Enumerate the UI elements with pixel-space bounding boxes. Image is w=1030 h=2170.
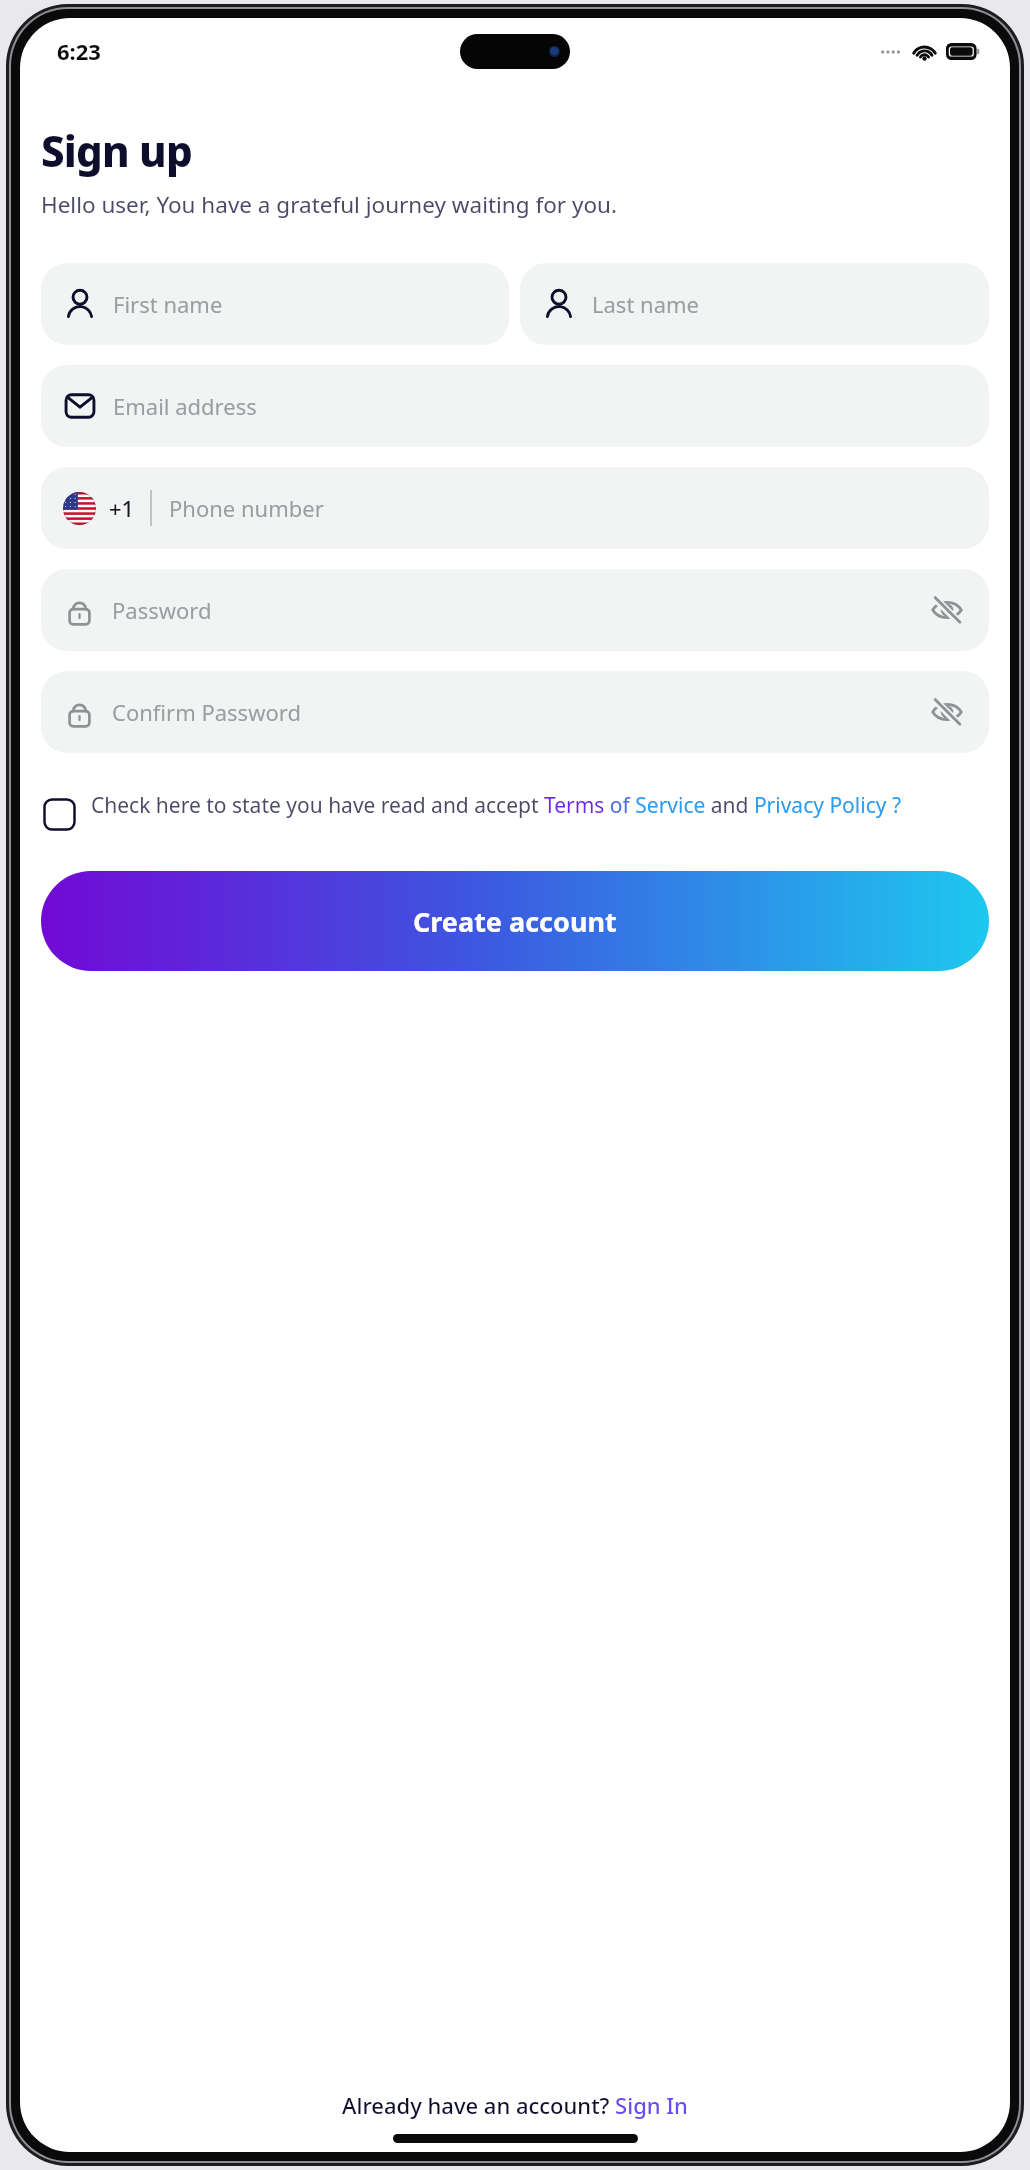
button[interactable]: Last name <box>520 263 989 345</box>
staticText: First name <box>113 289 223 319</box>
button[interactable]: Email address <box>41 365 989 447</box>
button[interactable]: Create account <box>41 871 989 971</box>
staticText: +1 <box>109 493 135 523</box>
staticText: Confirm Password <box>112 697 301 727</box>
button[interactable]: Password <box>41 569 989 651</box>
button[interactable]: Show password <box>925 588 969 632</box>
staticText: Sign up <box>41 122 192 179</box>
button[interactable]: Show password <box>925 690 969 734</box>
staticText: 6:23 <box>57 36 101 66</box>
button[interactable]: Accept terms checkbox <box>41 796 77 832</box>
button[interactable]: Check here to state you have read and ac… <box>91 791 989 820</box>
staticText: Email address <box>113 391 257 421</box>
staticText: Create account <box>413 903 617 940</box>
staticText: Phone number <box>169 493 324 523</box>
staticText: Hello user, You have a grateful journey … <box>41 189 617 220</box>
button[interactable]: Confirm Password <box>41 671 989 753</box>
button[interactable]: Already have an account? Sign In <box>342 2090 688 2120</box>
button[interactable]: First name <box>41 263 509 345</box>
staticText: Password <box>112 595 212 625</box>
staticText: Last name <box>592 289 699 319</box>
button[interactable]: +1 <box>41 467 989 549</box>
